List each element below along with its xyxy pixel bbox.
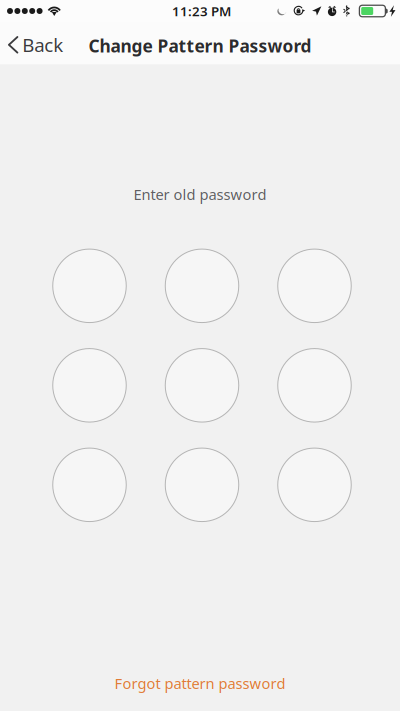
staticText: Change Pattern Password — [88, 34, 311, 57]
button[interactable]: Pattern node — [165, 349, 239, 422]
button[interactable]: Forgot pattern password — [108, 667, 291, 699]
button[interactable]: Pattern node — [278, 349, 351, 422]
button[interactable]: Pattern node — [165, 249, 239, 323]
button[interactable]: Pattern node — [165, 448, 239, 522]
staticText: 11:23 PM — [172, 2, 231, 20]
button[interactable]: Pattern node — [53, 249, 126, 323]
staticText: Forgot pattern password — [114, 673, 285, 693]
button[interactable]: Back — [0, 22, 71, 64]
button[interactable]: Pattern node — [278, 249, 351, 323]
button[interactable]: Pattern node — [53, 448, 126, 522]
staticText: Back — [22, 32, 63, 57]
button[interactable]: Pattern node — [53, 349, 126, 422]
button[interactable]: Pattern node — [278, 448, 351, 522]
staticText: Enter old password — [133, 185, 266, 204]
